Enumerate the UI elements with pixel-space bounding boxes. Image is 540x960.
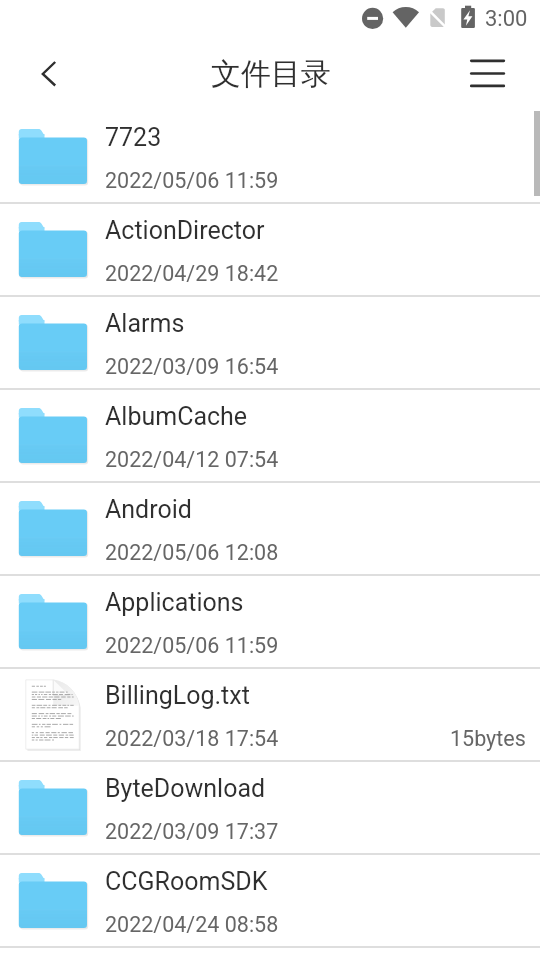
- staticText: 2022/04/12 07:54: [105, 447, 279, 472]
- button[interactable]: ActionDirector: [0, 203, 540, 296]
- button[interactable]: 7723: [0, 110, 540, 203]
- button[interactable]: CCGRoomSDK: [0, 854, 540, 947]
- button[interactable]: BillingLog.txt: [0, 668, 540, 761]
- button[interactable]: ByteDownload: [0, 761, 540, 854]
- button[interactable]: Alarms: [0, 296, 540, 389]
- staticText: 2022/04/29 18:42: [105, 261, 279, 286]
- staticText: CCGRoomSDK: [105, 867, 268, 896]
- staticText: 2022/03/18 17:54: [105, 726, 279, 751]
- staticText: 2022/03/09 16:54: [105, 354, 279, 379]
- staticText: Alarms: [105, 309, 185, 338]
- staticText: 2022/05/06 11:59: [105, 168, 279, 193]
- button[interactable]: Back: [20, 51, 66, 97]
- button[interactable]: Android: [0, 482, 540, 575]
- staticText: AlbumCache: [105, 402, 248, 431]
- button[interactable]: Applications: [0, 575, 540, 668]
- staticText: 文件目录: [211, 55, 540, 93]
- staticText: 3:00: [485, 6, 528, 32]
- staticText: 2022/05/06 11:59: [105, 633, 279, 658]
- staticText: Android: [105, 495, 192, 524]
- staticText: 2022/03/09 17:37: [105, 819, 279, 844]
- staticText: 2022/05/06 12:08: [105, 540, 279, 565]
- staticText: Applications: [105, 588, 244, 617]
- staticText: 15bytes: [450, 726, 526, 751]
- staticText: 2022/04/24 08:58: [105, 912, 279, 937]
- staticText: BillingLog.txt: [105, 681, 250, 710]
- button[interactable]: Menu: [459, 49, 517, 97]
- staticText: ActionDirector: [105, 216, 265, 245]
- staticText: 7723: [105, 123, 162, 152]
- staticText: ByteDownload: [105, 774, 266, 803]
- button[interactable]: AlbumCache: [0, 389, 540, 482]
